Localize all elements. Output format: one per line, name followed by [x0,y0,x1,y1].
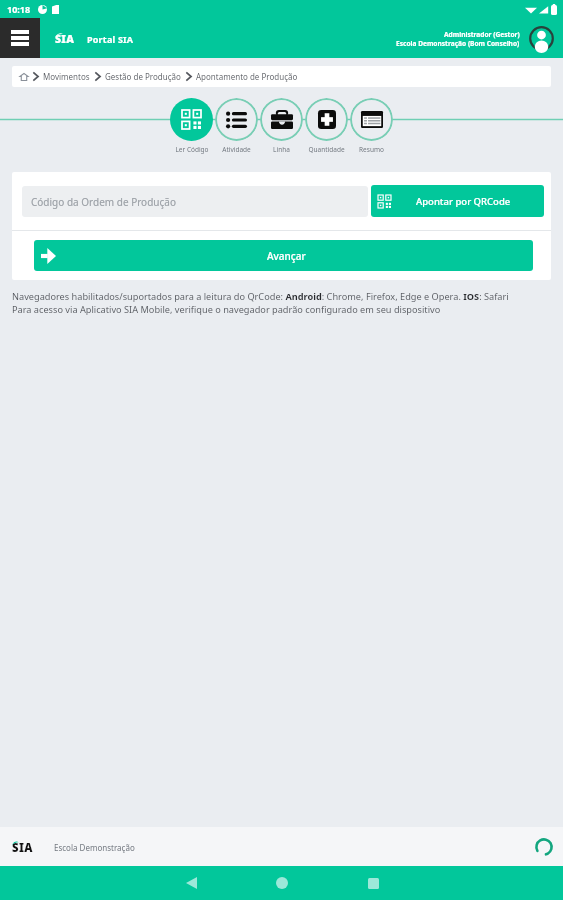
staticText: Navegadores habilitados/suportados para … [12,290,509,303]
other: Carregando [535,838,553,856]
staticText: Movimentos [43,71,90,82]
button[interactable]: Quantidade [304,98,349,154]
button[interactable]: Recentes [351,866,395,900]
button[interactable]: Abrir menu [0,18,40,58]
staticText: Avançar [267,249,306,263]
staticText: Portal SIA [87,33,134,45]
button[interactable]: Apontar por QRCode [371,185,544,217]
button[interactable]: Ler Código [169,98,214,154]
staticText: Escola Demonstração [54,842,135,853]
staticText: Para acesso via Aplicativo SIA Mobile, v… [12,303,441,316]
staticText: Resumo [359,145,384,154]
button[interactable]: Atividade [214,98,259,154]
staticText: Apontamento de Produção [196,71,298,82]
button[interactable]: Resumo [349,98,394,154]
staticText: Apontar por QRCode [416,195,511,208]
staticText: Atividade [222,145,251,154]
button[interactable]: Código da Ordem de Produção [22,186,368,217]
button[interactable]: Perfil do usuário [529,26,554,51]
staticText: Administrador (Gestor) [444,30,520,39]
staticText: Ler Código [175,145,209,154]
staticText: Quantidade [308,145,345,154]
staticText: SIA [12,840,33,854]
staticText: SIA [55,32,75,45]
staticText: Código da Ordem de Produção [31,195,176,209]
button[interactable]: Avançar [34,240,533,271]
button[interactable]: Início [260,866,304,900]
button[interactable]: Voltar [169,866,213,900]
staticText: Escola Demonstração (Bom Conselho) [396,39,520,48]
staticText: Gestão de Produção [105,71,181,82]
staticText: Linha [273,145,290,154]
button[interactable]: Linha [259,98,304,154]
staticText: 10:18 [7,3,31,15]
